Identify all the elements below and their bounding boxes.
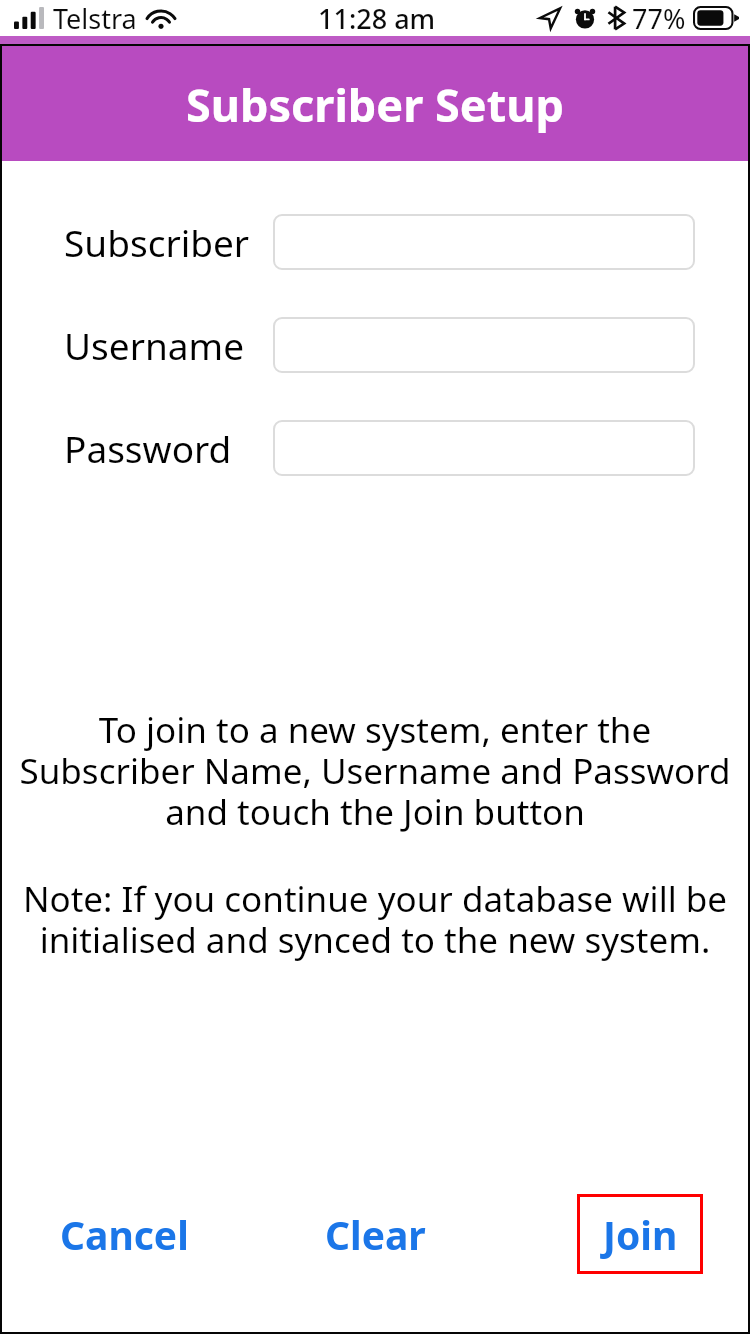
- button[interactable]: Clear: [325, 1208, 426, 1260]
- staticText: Username: [64, 320, 245, 370]
- staticText: Password: [64, 423, 232, 473]
- staticText: Cancel: [60, 1208, 189, 1260]
- staticText: Subscriber Setup: [186, 74, 564, 135]
- staticText: 77%: [632, 0, 686, 36]
- button[interactable]: Username: [273, 317, 695, 373]
- button[interactable]: Cancel: [60, 1208, 189, 1260]
- button[interactable]: Join: [577, 1194, 703, 1274]
- staticText: 11:28 am: [318, 0, 436, 36]
- staticText: Subscriber: [64, 217, 250, 267]
- staticText: Telstra: [53, 0, 137, 36]
- button[interactable]: Password: [273, 420, 695, 476]
- staticText: Clear: [325, 1208, 426, 1260]
- staticText: Join: [603, 1208, 678, 1261]
- button[interactable]: Subscriber: [273, 214, 695, 270]
- staticText: Note: If you continue your database will…: [10, 875, 740, 963]
- staticText: To join to a new system, enter the Subsc…: [10, 706, 740, 835]
